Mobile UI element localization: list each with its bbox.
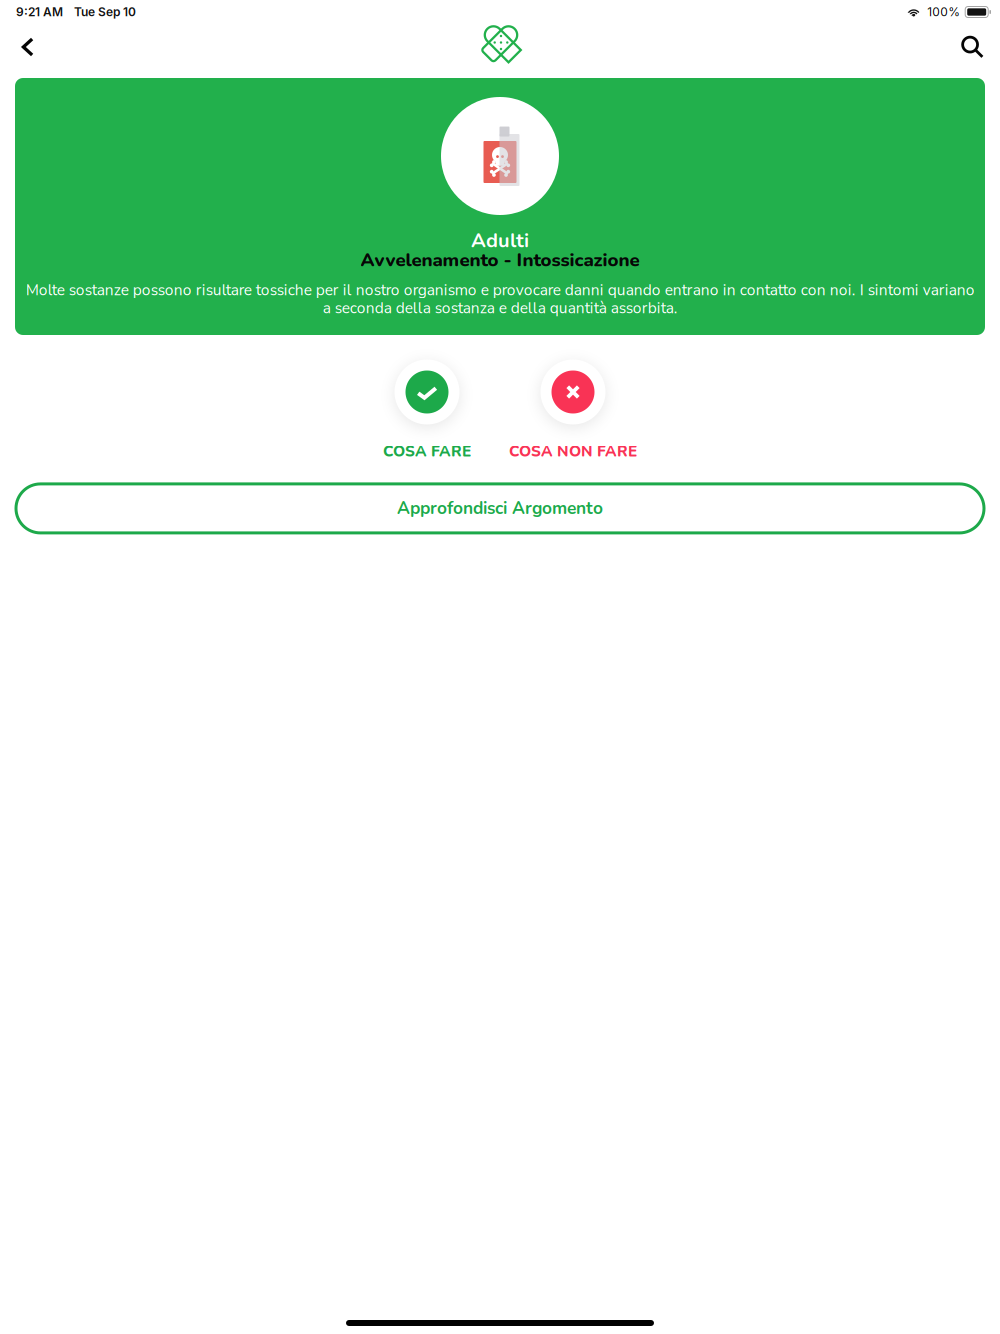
button[interactable]: Search bbox=[944, 25, 1000, 68]
staticText: Adulti bbox=[471, 227, 529, 254]
button[interactable]: Approfondisci Argomento bbox=[16, 484, 984, 533]
staticText: Approfondisci Argomento bbox=[397, 497, 603, 520]
staticText: Avvelenamento - Intossicazione bbox=[360, 247, 639, 273]
button[interactable]: COSA FARE bbox=[354, 356, 500, 462]
staticText: 100% bbox=[927, 5, 960, 19]
staticText: Molte sostanze possono risultare tossich… bbox=[25, 280, 974, 318]
button[interactable]: Back bbox=[0, 27, 51, 66]
staticText: 9:21 AM bbox=[16, 5, 63, 19]
staticText: COSA FARE bbox=[383, 441, 471, 462]
button[interactable]: COSA NON FARE bbox=[500, 356, 646, 462]
staticText: COSA NON FARE bbox=[509, 441, 637, 462]
staticText: Tue Sep 10 bbox=[74, 5, 136, 19]
